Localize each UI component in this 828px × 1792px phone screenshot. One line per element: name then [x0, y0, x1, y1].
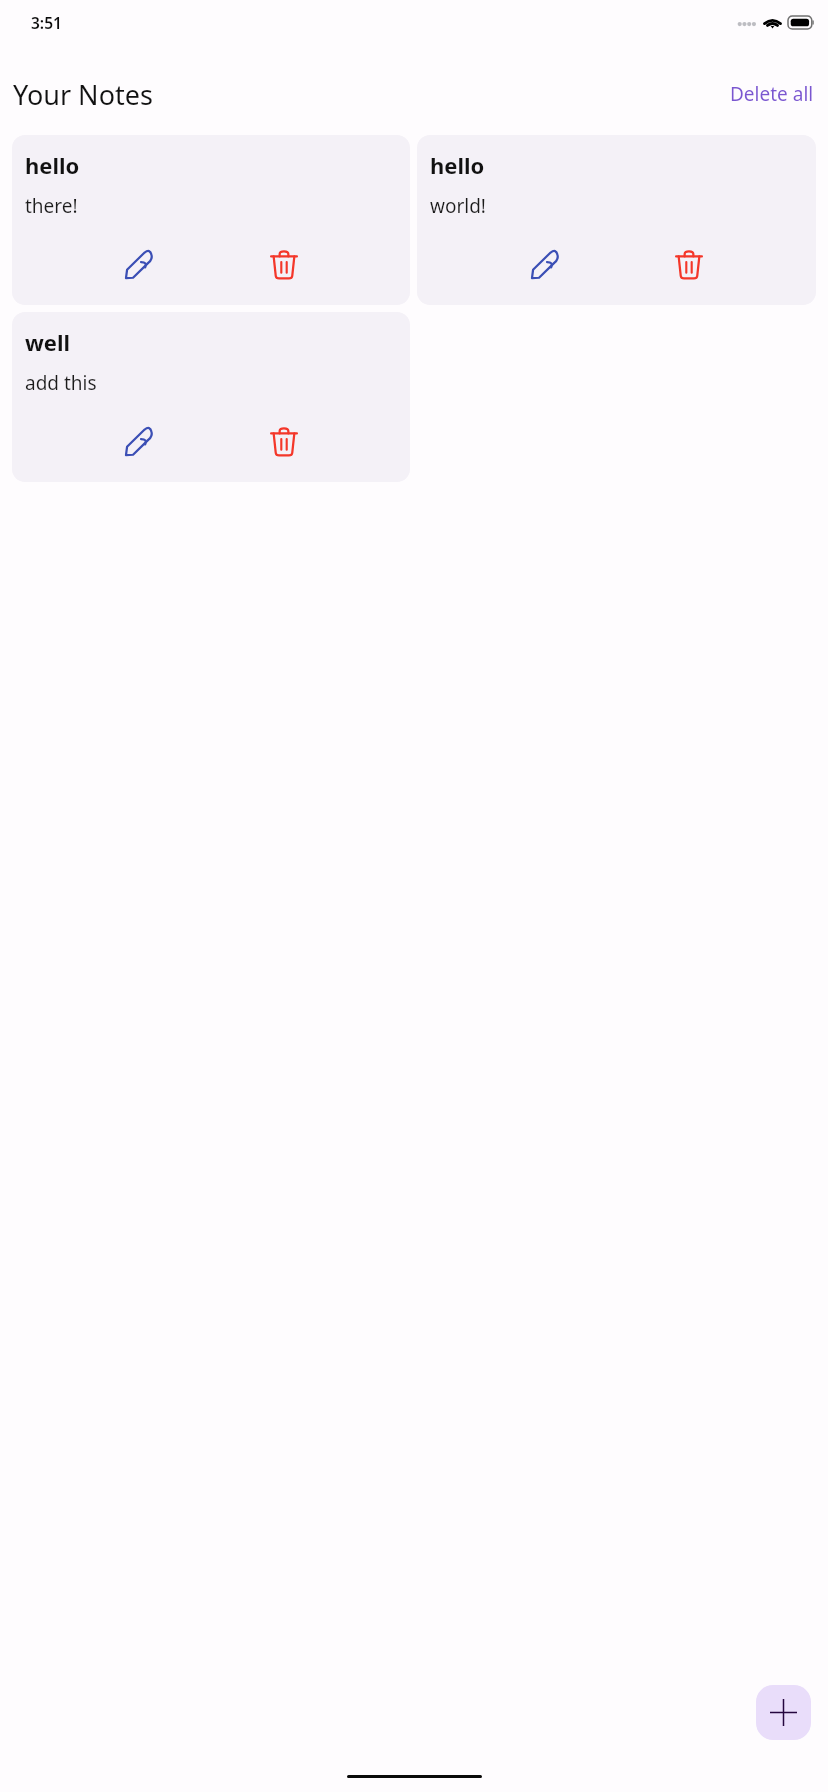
button[interactable]: Delete note: [258, 416, 310, 468]
staticText: there!: [25, 193, 78, 219]
staticText: 3:51: [31, 12, 62, 33]
button[interactable]: well: [12, 312, 410, 482]
button[interactable]: Delete note: [663, 239, 715, 291]
button[interactable]: Delete all: [716, 75, 828, 113]
staticText: world!: [430, 193, 486, 219]
staticText: Your Notes: [13, 76, 153, 113]
staticText: add this: [25, 370, 97, 396]
button[interactable]: Edit note: [112, 416, 164, 468]
staticText: hello: [25, 150, 80, 180]
staticText: hello: [430, 150, 485, 180]
staticText: well: [25, 327, 71, 357]
button[interactable]: hello: [417, 135, 816, 305]
button[interactable]: Delete note: [258, 239, 310, 291]
button[interactable]: Add note: [756, 1685, 811, 1740]
button[interactable]: Edit note: [112, 239, 164, 291]
staticText: Delete all: [730, 81, 814, 107]
button[interactable]: Edit note: [518, 239, 570, 291]
button[interactable]: hello: [12, 135, 410, 305]
